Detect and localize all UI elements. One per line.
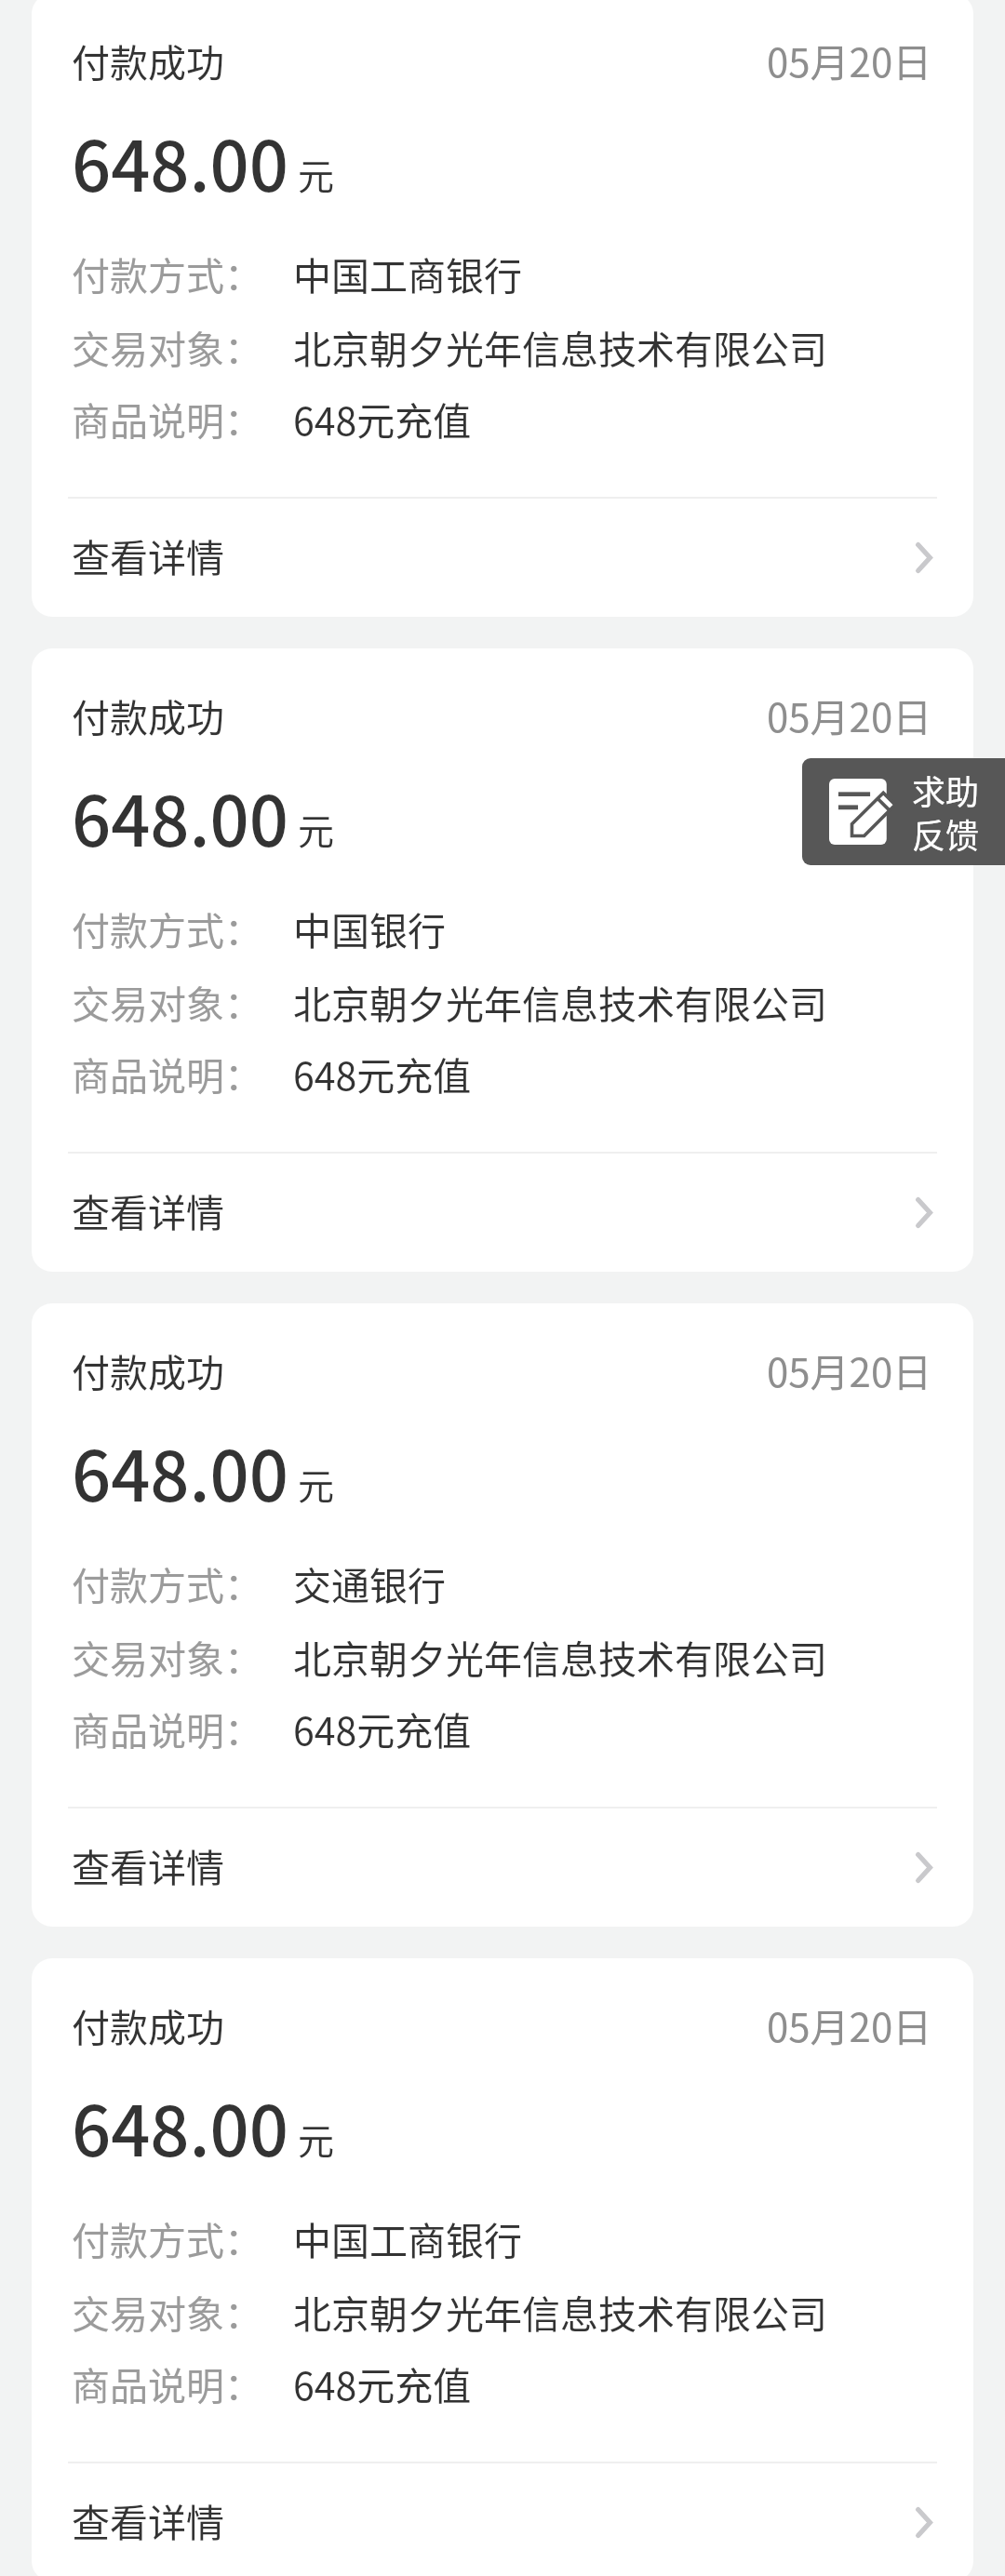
- staticText: 北京朝夕光年信息技术有限公司: [293, 319, 827, 374]
- staticText: 求助 反馈: [912, 766, 980, 859]
- staticText: 付款方式：: [72, 901, 262, 955]
- staticText: 查看详情: [72, 2492, 224, 2547]
- other: 查看详情: [916, 1852, 932, 1883]
- other: 查看详情: [916, 1197, 932, 1228]
- staticText: 05月20日: [767, 1996, 932, 2053]
- staticText: 北京朝夕光年信息技术有限公司: [293, 974, 827, 1029]
- staticText: 北京朝夕光年信息技术有限公司: [293, 1629, 827, 1684]
- staticText: 元: [298, 803, 335, 855]
- staticText: 05月20日: [767, 687, 932, 743]
- other: 查看详情: [916, 2507, 932, 2538]
- other: 查看详情: [916, 542, 932, 573]
- staticText: 查看详情: [72, 527, 224, 582]
- staticText: 商品说明：: [72, 391, 262, 446]
- staticText: 648.00: [72, 112, 288, 211]
- staticText: 648.00: [72, 767, 288, 866]
- button[interactable]: 付款成功: [32, 1958, 973, 2576]
- staticText: 付款方式：: [72, 246, 262, 300]
- staticText: 商品说明：: [72, 1046, 262, 1101]
- button[interactable]: 付款成功: [32, 0, 973, 617]
- staticText: 648.00: [72, 1421, 288, 1521]
- button[interactable]: 查看详情: [32, 499, 973, 617]
- staticText: 648.00: [72, 2076, 288, 2176]
- staticText: 中国工商银行: [293, 2210, 522, 2265]
- staticText: 648元充值: [293, 2356, 472, 2410]
- button[interactable]: 查看详情: [32, 1154, 973, 1272]
- staticText: 交易对象：: [72, 1629, 262, 1684]
- staticText: 648元充值: [293, 1046, 472, 1101]
- staticText: 648元充值: [293, 1701, 472, 1755]
- button[interactable]: 查看详情: [32, 2463, 973, 2576]
- button[interactable]: 付款成功: [32, 1303, 973, 1927]
- staticText: 05月20日: [767, 32, 932, 88]
- staticText: 中国工商银行: [293, 246, 522, 300]
- staticText: 元: [298, 1458, 335, 1510]
- button[interactable]: 查看详情: [32, 1809, 973, 1927]
- staticText: 中国银行: [293, 901, 446, 955]
- staticText: 付款方式：: [72, 2210, 262, 2265]
- staticText: 交易对象：: [72, 2284, 262, 2339]
- button[interactable]: 求助反馈: [802, 758, 1005, 865]
- staticText: 付款成功: [72, 687, 224, 742]
- staticText: 商品说明：: [72, 2356, 262, 2410]
- staticText: 北京朝夕光年信息技术有限公司: [293, 2284, 827, 2339]
- staticText: 交易对象：: [72, 974, 262, 1029]
- staticText: 交易对象：: [72, 319, 262, 374]
- staticText: 元: [298, 148, 335, 200]
- button[interactable]: 付款成功: [32, 648, 973, 1272]
- staticText: 付款成功: [72, 1997, 224, 2052]
- staticText: 05月20日: [767, 1341, 932, 1398]
- staticText: 付款成功: [72, 33, 224, 87]
- staticText: 查看详情: [72, 1182, 224, 1237]
- staticText: 付款成功: [72, 1342, 224, 1397]
- staticText: 查看详情: [72, 1837, 224, 1892]
- staticText: 元: [298, 2113, 335, 2165]
- staticText: 648元充值: [293, 391, 472, 446]
- staticText: 交通银行: [293, 1555, 446, 1610]
- staticText: 付款方式：: [72, 1555, 262, 1610]
- staticText: 商品说明：: [72, 1701, 262, 1755]
